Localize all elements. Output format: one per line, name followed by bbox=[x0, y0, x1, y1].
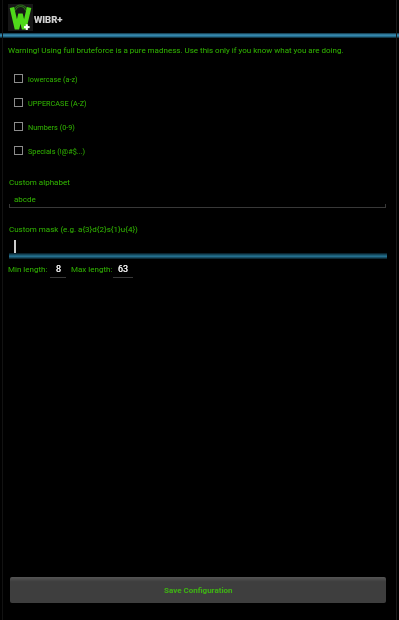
staticText: Min length: bbox=[8, 265, 48, 274]
staticText: Max length: bbox=[71, 265, 113, 274]
button[interactable] bbox=[9, 238, 386, 256]
staticText: abcde bbox=[14, 195, 36, 204]
button[interactable]: lowercase (a-z) bbox=[0, 66, 399, 90]
button[interactable]: UPPERCASE (A-Z) bbox=[0, 90, 399, 114]
button[interactable]: Numbers (0-9) bbox=[0, 114, 399, 138]
button[interactable] bbox=[50, 263, 66, 277]
staticText: UPPERCASE (A-Z) bbox=[28, 99, 87, 108]
button[interactable] bbox=[9, 190, 386, 208]
staticText: 8 bbox=[56, 264, 62, 275]
staticText: lowercase (a-z) bbox=[28, 75, 78, 84]
staticText: Warning! Using full bruteforce is a pure… bbox=[8, 46, 344, 55]
staticText: Specials (!@#$...) bbox=[28, 147, 86, 156]
button[interactable]: Save Configuration bbox=[10, 577, 386, 603]
staticText: Numbers (0-9) bbox=[28, 123, 75, 132]
button[interactable]: Specials (!@#$...) bbox=[0, 138, 399, 162]
staticText: 63 bbox=[118, 264, 129, 275]
staticText: Custom mask (e.g. a{3}d{2}s{1}u{4}) bbox=[9, 225, 138, 234]
button[interactable] bbox=[113, 263, 133, 277]
staticText: Save Configuration bbox=[164, 586, 233, 595]
staticText: WIBR+ bbox=[34, 14, 63, 25]
staticText: Custom alphabet bbox=[9, 178, 70, 187]
